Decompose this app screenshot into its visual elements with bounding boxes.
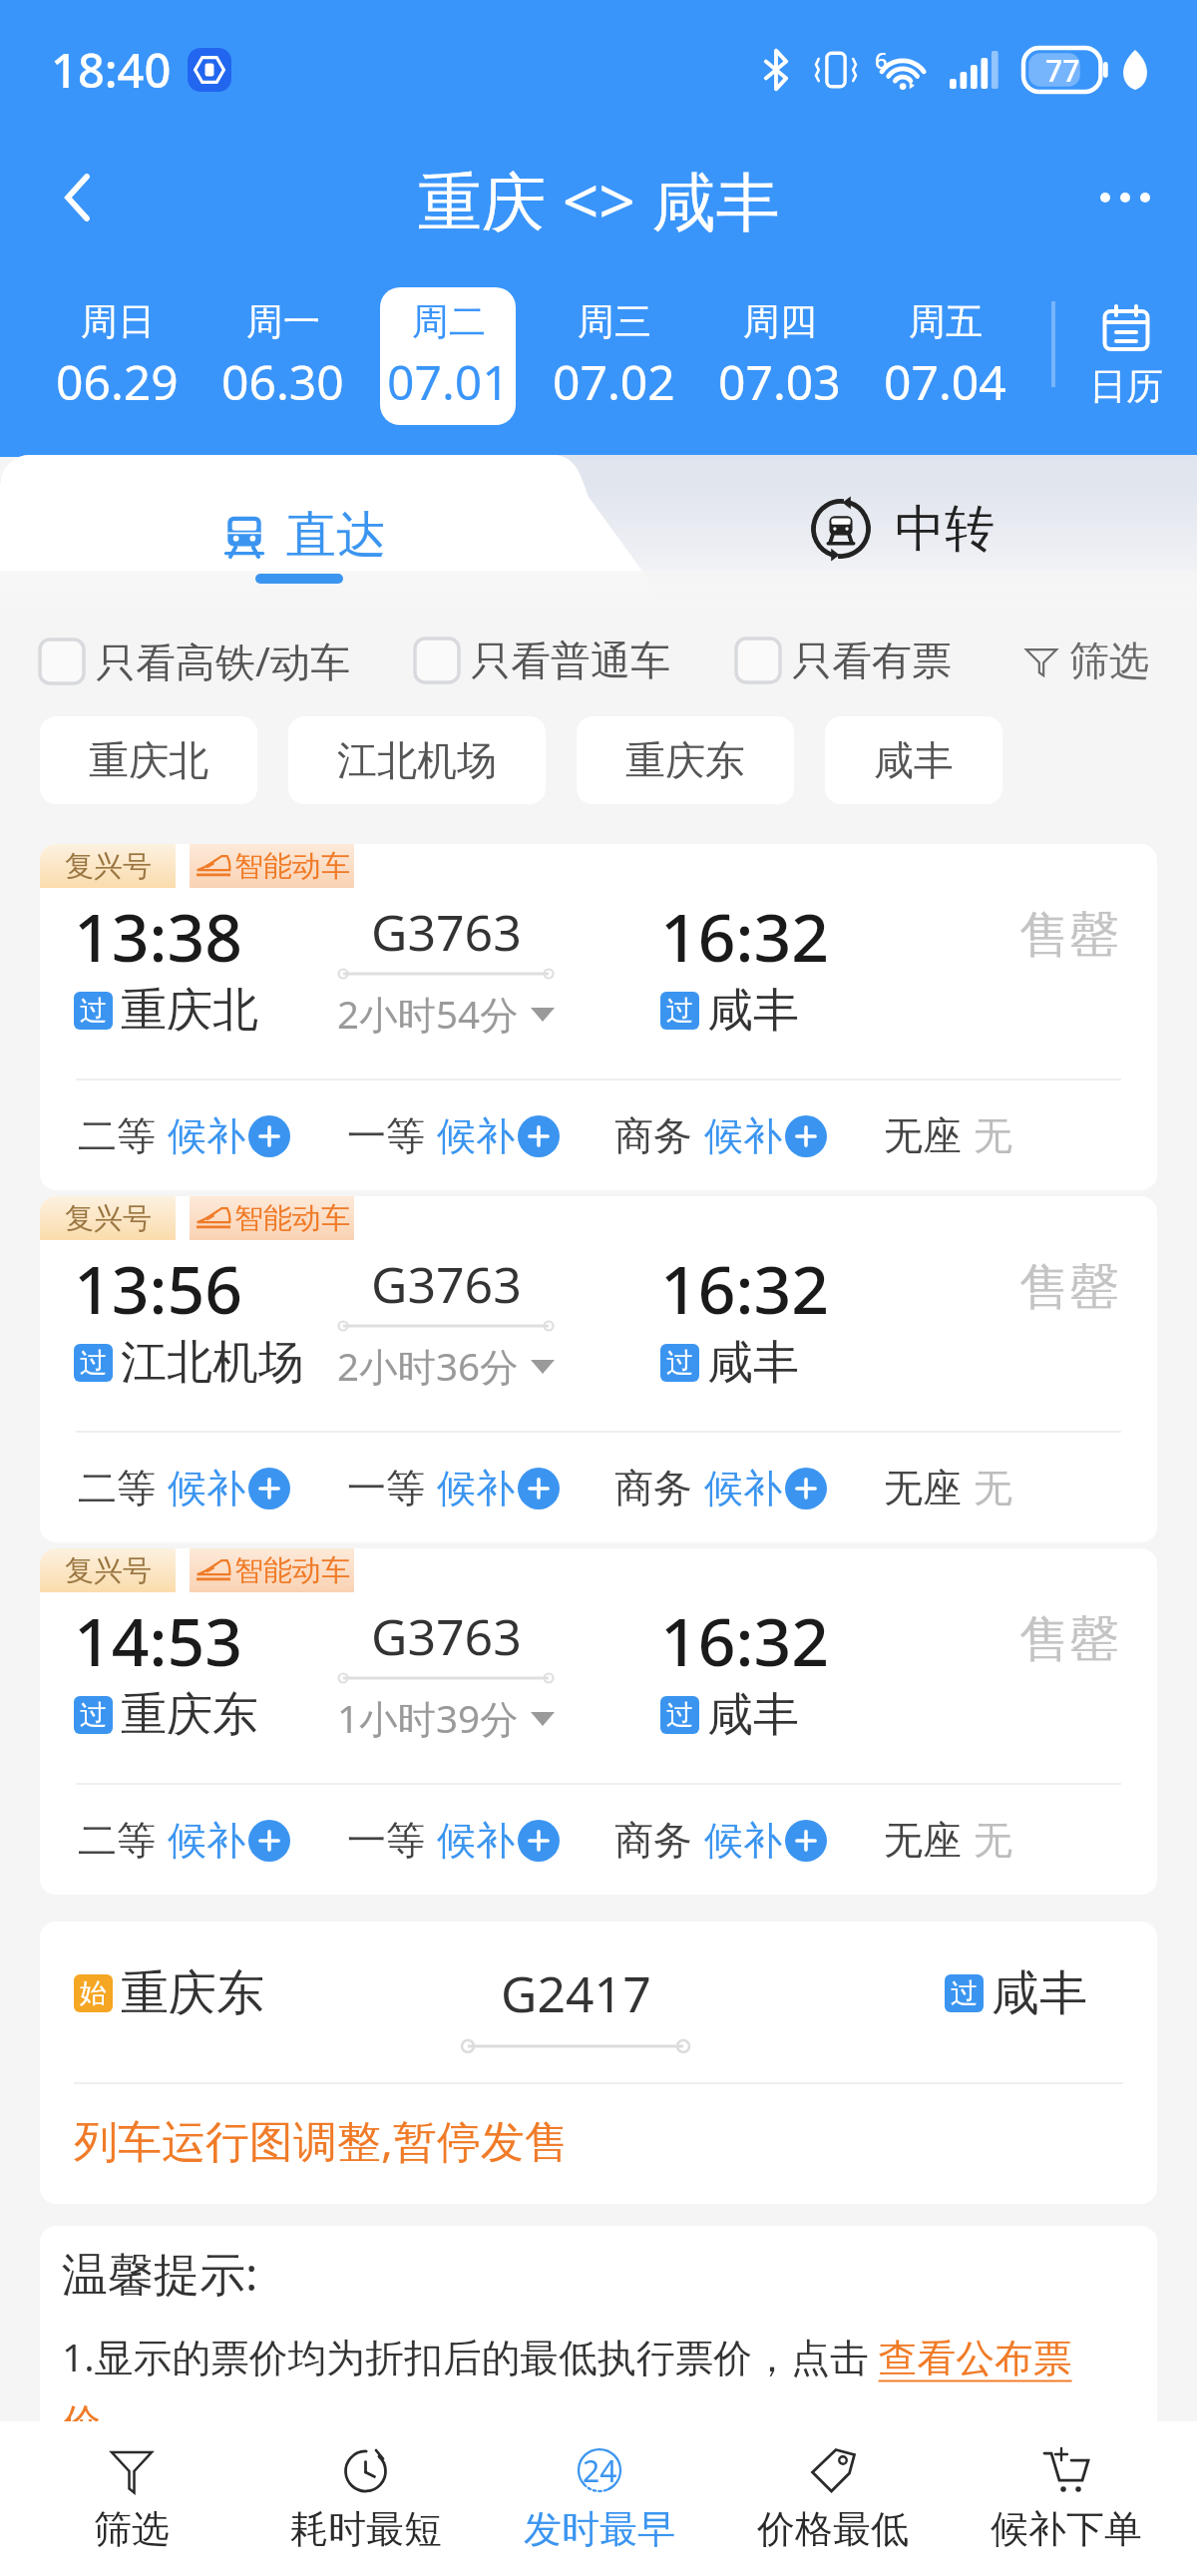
button[interactable]: 周三: [546, 287, 681, 425]
button[interactable]: 只看高铁/动车: [40, 634, 415, 688]
staticText: 候补: [704, 1111, 782, 1160]
staticText: 过: [951, 1976, 978, 2010]
button[interactable]: 周二: [380, 287, 516, 425]
button[interactable]: 价格最低: [716, 2421, 950, 2576]
button[interactable]: 重庆北: [40, 716, 257, 804]
staticText: 日历: [1089, 363, 1163, 410]
button[interactable]: 一等: [347, 1111, 614, 1160]
staticText: 江北机场: [337, 735, 497, 785]
staticText: 18:40: [51, 38, 172, 102]
staticText: 温馨提示:: [62, 2242, 258, 2305]
staticText: 过: [666, 994, 693, 1028]
staticText: 直达: [286, 504, 386, 567]
staticText: 06.30: [221, 349, 344, 414]
button[interactable]: 直达: [0, 455, 598, 611]
button[interactable]: 二等: [78, 1111, 347, 1160]
button[interactable]: 中转: [598, 455, 995, 611]
button[interactable]: 商务: [614, 1816, 884, 1865]
staticText: G3763: [371, 898, 522, 966]
button[interactable]: 一等: [347, 1816, 614, 1865]
staticText: 过: [80, 1346, 107, 1380]
staticText: 列车运行图调整,暂停发售: [74, 2110, 569, 2170]
button[interactable]: 24: [483, 2421, 716, 2576]
button[interactable]: 复兴号: [40, 1196, 1157, 1542]
button[interactable]: 复兴号: [40, 844, 1157, 1190]
staticText: 16:32: [660, 891, 829, 981]
staticText: 候补: [168, 1464, 245, 1512]
button[interactable]: 筛选: [14, 2421, 248, 2576]
button[interactable]: 复兴号: [40, 1548, 1157, 1895]
staticText: 无: [974, 1464, 1012, 1512]
button[interactable]: 只看有票: [736, 636, 1023, 685]
staticText: 16:32: [660, 1595, 829, 1685]
button[interactable]: 咸丰: [825, 716, 1002, 804]
staticText: 始: [80, 1976, 107, 2010]
staticText: 候补: [704, 1464, 782, 1512]
staticText: 咸丰: [707, 1334, 799, 1392]
staticText: 候补: [704, 1816, 782, 1865]
button[interactable]: 候补下单: [950, 2421, 1183, 2576]
staticText: 筛选: [1069, 636, 1149, 685]
button[interactable]: 周四: [711, 287, 847, 425]
button[interactable]: 二等: [78, 1464, 347, 1512]
staticText: 候补: [168, 1111, 245, 1160]
staticText: 07.01: [387, 349, 510, 414]
button[interactable]: 周日: [49, 287, 185, 425]
staticText: 2小时36分: [337, 1340, 519, 1393]
button[interactable]: 二等: [78, 1816, 347, 1865]
staticText: 价格最低: [757, 2505, 909, 2553]
button[interactable]: 只看普通车: [415, 636, 736, 685]
staticText: 77: [1045, 50, 1080, 91]
staticText: 一等: [347, 1111, 425, 1160]
staticText: 中转: [895, 498, 995, 561]
staticText: 无: [974, 1816, 1012, 1865]
button[interactable]: More options: [1077, 150, 1173, 245]
staticText: 周五: [909, 298, 983, 345]
staticText: 周一: [246, 298, 320, 345]
button[interactable]: 周一: [214, 287, 350, 425]
button[interactable]: 商务: [614, 1111, 884, 1160]
staticText: 16:32: [660, 1243, 829, 1333]
staticText: 1小时39分: [337, 1692, 519, 1745]
staticText: 周三: [578, 298, 651, 345]
button[interactable]: 一等: [347, 1464, 614, 1512]
button[interactable]: 江北机场: [288, 716, 546, 804]
staticText: 商务: [614, 1464, 692, 1512]
button[interactable]: Back: [30, 150, 126, 245]
staticText: 筛选: [94, 2505, 170, 2553]
staticText: 智能动车: [234, 1200, 350, 1237]
staticText: 6: [875, 45, 888, 75]
staticText: 复兴号: [65, 1552, 152, 1589]
staticText: 商务: [614, 1111, 692, 1160]
staticText: 咸丰: [707, 1686, 799, 1744]
button[interactable]: 始: [40, 1922, 1157, 2204]
staticText: 过: [80, 1698, 107, 1732]
staticText: 江北机场: [121, 1334, 304, 1392]
staticText: 07.02: [553, 349, 675, 414]
staticText: 复兴号: [65, 848, 152, 885]
staticText: 无座: [884, 1816, 962, 1865]
button[interactable]: Calendar: [1055, 287, 1197, 425]
staticText: 售罄: [1019, 1608, 1119, 1671]
button[interactable]: 筛选: [1023, 636, 1157, 685]
staticText: 周二: [412, 298, 486, 345]
staticText: 候补: [437, 1111, 515, 1160]
button[interactable]: 重庆东: [577, 716, 794, 804]
staticText: G3763: [371, 1602, 522, 1670]
staticText: 智能动车: [234, 848, 350, 885]
staticText: 24: [583, 2450, 617, 2491]
button[interactable]: 耗时最短: [248, 2421, 483, 2576]
staticText: 咸丰: [707, 982, 799, 1040]
staticText: 07.04: [884, 349, 1006, 414]
button[interactable]: 周五: [877, 287, 1012, 425]
staticText: 耗时最短: [290, 2505, 442, 2553]
staticText: 咸丰: [874, 735, 954, 785]
staticText: 只看高铁/动车: [96, 634, 350, 688]
staticText: 无座: [884, 1111, 962, 1160]
staticText: 周日: [81, 298, 155, 345]
staticText: 过: [666, 1698, 693, 1732]
staticText: 咸丰: [992, 1963, 1087, 2023]
staticText: 重庆北: [89, 735, 208, 785]
button[interactable]: 商务: [614, 1464, 884, 1512]
staticText: 重庆北: [121, 982, 258, 1040]
